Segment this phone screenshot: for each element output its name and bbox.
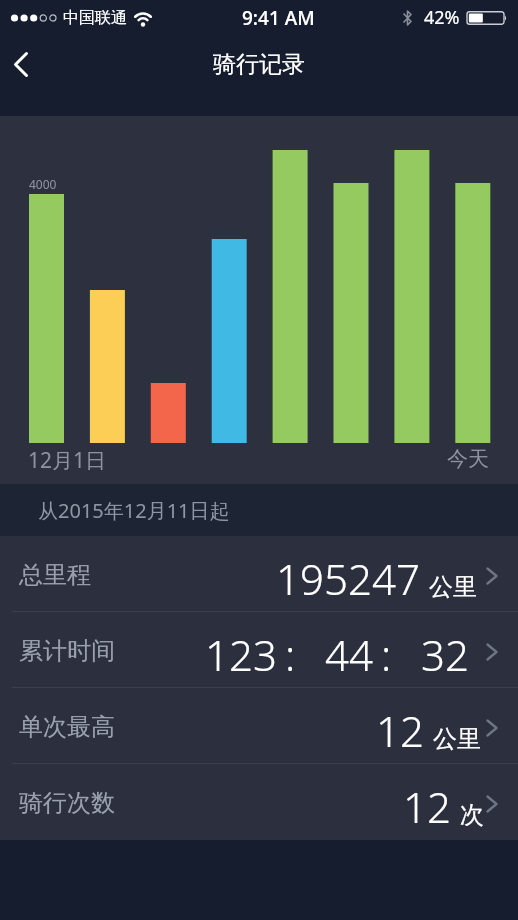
staticText: 195247 (276, 550, 420, 607)
staticText: : (381, 626, 392, 683)
staticText: 单次最高 (19, 712, 115, 742)
staticText: 123 (205, 626, 277, 683)
staticText: 9:41 AM (242, 5, 315, 31)
staticText: 公里 (429, 572, 477, 602)
staticText: : (285, 626, 296, 683)
staticText: 总里程 (19, 560, 91, 590)
button[interactable]: 累计时间 (0, 612, 518, 688)
staticText: 累计时间 (19, 636, 115, 666)
staticText: 骑行记录 (213, 50, 305, 79)
staticText: 公里 (433, 724, 481, 754)
button[interactable]: 单次最高 (0, 688, 518, 764)
staticText: 中国联通 (63, 8, 127, 28)
staticText: 4000 (29, 176, 57, 192)
staticText: 今天 (447, 446, 489, 472)
button[interactable] (2, 45, 40, 83)
staticText: 32 (421, 626, 469, 683)
staticText: 42% (424, 5, 460, 30)
staticText: 从2015年12月11日起 (38, 497, 230, 524)
staticText: 次 (460, 800, 484, 830)
staticText: 骑行次数 (19, 788, 115, 818)
staticText: 12 (403, 778, 451, 835)
button[interactable]: 总里程 (0, 536, 518, 612)
staticText: 12 (376, 702, 424, 759)
button[interactable]: 骑行次数 (0, 764, 518, 840)
staticText: 44 (325, 626, 373, 683)
staticText: 12月1日 (28, 446, 107, 475)
